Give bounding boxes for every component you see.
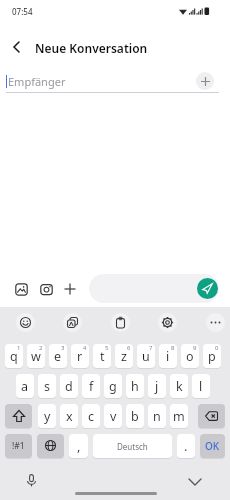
button[interactable]: j	[148, 374, 166, 398]
button[interactable]	[64, 283, 76, 295]
staticText: 5	[105, 344, 109, 352]
staticText: j	[155, 378, 159, 395]
staticText: 0	[215, 344, 219, 352]
button[interactable]	[89, 274, 219, 303]
button[interactable]: l	[192, 374, 210, 398]
button[interactable]: p	[203, 344, 221, 368]
staticText: n	[153, 408, 161, 425]
button[interactable]	[40, 283, 53, 296]
button[interactable]	[6, 36, 28, 58]
button[interactable]	[111, 313, 130, 332]
button[interactable]: q	[5, 344, 23, 368]
staticText: 8	[171, 344, 175, 352]
staticText: s	[44, 378, 50, 395]
staticText: Neue Konversation	[35, 40, 148, 56]
staticText: 07:54	[12, 6, 33, 17]
button[interactable]	[16, 313, 35, 332]
staticText: e	[54, 348, 62, 365]
button[interactable]: t	[93, 344, 111, 368]
button[interactable]	[196, 72, 214, 90]
button[interactable]: v	[104, 404, 122, 428]
button[interactable]: .	[177, 434, 195, 458]
button[interactable]: o	[181, 344, 199, 368]
button[interactable]: i	[159, 344, 177, 368]
staticText: f	[89, 378, 94, 395]
button[interactable]: m	[170, 404, 188, 428]
staticText: c	[88, 408, 95, 425]
button[interactable]: ,	[69, 434, 88, 458]
button[interactable]: x	[60, 404, 78, 428]
button[interactable]: g	[104, 374, 122, 398]
button[interactable]: u	[137, 344, 155, 368]
button[interactable]: h	[126, 374, 144, 398]
button[interactable]: e	[49, 344, 67, 368]
staticText: l	[199, 378, 203, 395]
staticText: m	[173, 408, 185, 425]
staticText: z	[121, 348, 127, 365]
button[interactable]: w	[27, 344, 45, 368]
button[interactable]: d	[60, 374, 78, 398]
staticText: h	[131, 378, 139, 395]
staticText: r	[77, 348, 83, 365]
button[interactable]	[5, 404, 32, 428]
staticText: 4	[83, 344, 87, 352]
staticText: p	[208, 348, 216, 365]
button[interactable]: a	[16, 374, 34, 398]
staticText: 3	[61, 344, 65, 352]
staticText: 7	[149, 344, 153, 352]
staticText: y	[44, 408, 51, 425]
staticText: 9	[193, 344, 197, 352]
staticText: i	[166, 348, 170, 365]
button[interactable]: y	[38, 404, 56, 428]
staticText: a	[21, 378, 29, 395]
button[interactable]	[37, 434, 64, 458]
button[interactable]: n	[148, 404, 166, 428]
staticText: x	[66, 408, 73, 425]
button[interactable]: !#1	[5, 434, 32, 458]
staticText: 2	[39, 344, 43, 352]
button[interactable]	[63, 313, 82, 332]
button[interactable]: c	[82, 404, 100, 428]
staticText: 6	[127, 344, 131, 352]
staticText: 1	[17, 344, 21, 352]
button[interactable]: z	[115, 344, 133, 368]
staticText: ,	[77, 437, 81, 455]
staticText: u	[142, 348, 150, 365]
staticText: d	[65, 378, 73, 395]
staticText: w	[31, 348, 41, 365]
staticText: !#1	[12, 440, 25, 452]
staticText: o	[186, 348, 194, 365]
staticText: b	[131, 408, 139, 425]
button[interactable]: k	[170, 374, 188, 398]
staticText: v	[110, 408, 117, 425]
staticText: t	[100, 348, 105, 365]
staticText: OK	[205, 439, 220, 453]
button[interactable]: OK	[200, 434, 225, 458]
staticText: k	[176, 378, 183, 395]
staticText: .	[184, 437, 188, 455]
button[interactable]: s	[38, 374, 56, 398]
button[interactable]	[197, 278, 218, 299]
button[interactable]: r	[71, 344, 89, 368]
staticText: g	[109, 378, 117, 395]
button[interactable]: Deutsch	[93, 434, 172, 458]
button[interactable]	[158, 313, 177, 332]
button[interactable]	[198, 404, 225, 428]
staticText: Deutsch	[117, 441, 148, 452]
staticText: Empfänger	[8, 74, 66, 89]
button[interactable]	[206, 313, 225, 332]
button[interactable]: f	[82, 374, 100, 398]
staticText: q	[10, 348, 18, 365]
button[interactable]	[186, 475, 204, 491]
button[interactable]	[15, 283, 28, 296]
button[interactable]	[22, 471, 41, 490]
button[interactable]: b	[126, 404, 144, 428]
